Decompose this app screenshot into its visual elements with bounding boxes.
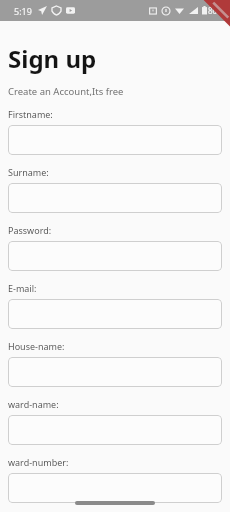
staticText: 5:19 (14, 5, 32, 17)
button[interactable] (8, 241, 222, 271)
button[interactable] (8, 357, 222, 387)
staticText: House-name: (8, 340, 65, 352)
staticText: Sign up (8, 42, 97, 75)
button[interactable] (8, 415, 222, 445)
staticText: Password: (8, 224, 52, 236)
staticText: ward-number: (8, 456, 69, 468)
button[interactable] (8, 125, 222, 155)
staticText: ward-name: (8, 398, 59, 410)
button[interactable] (8, 299, 222, 329)
staticText: 80% (208, 5, 224, 16)
staticText: Surname: (8, 166, 49, 178)
staticText: Create an Account,Its free (8, 85, 124, 98)
button[interactable] (8, 183, 222, 213)
staticText: E-mail: (8, 282, 37, 294)
staticText: Firstname: (8, 108, 53, 120)
button[interactable] (8, 473, 222, 503)
